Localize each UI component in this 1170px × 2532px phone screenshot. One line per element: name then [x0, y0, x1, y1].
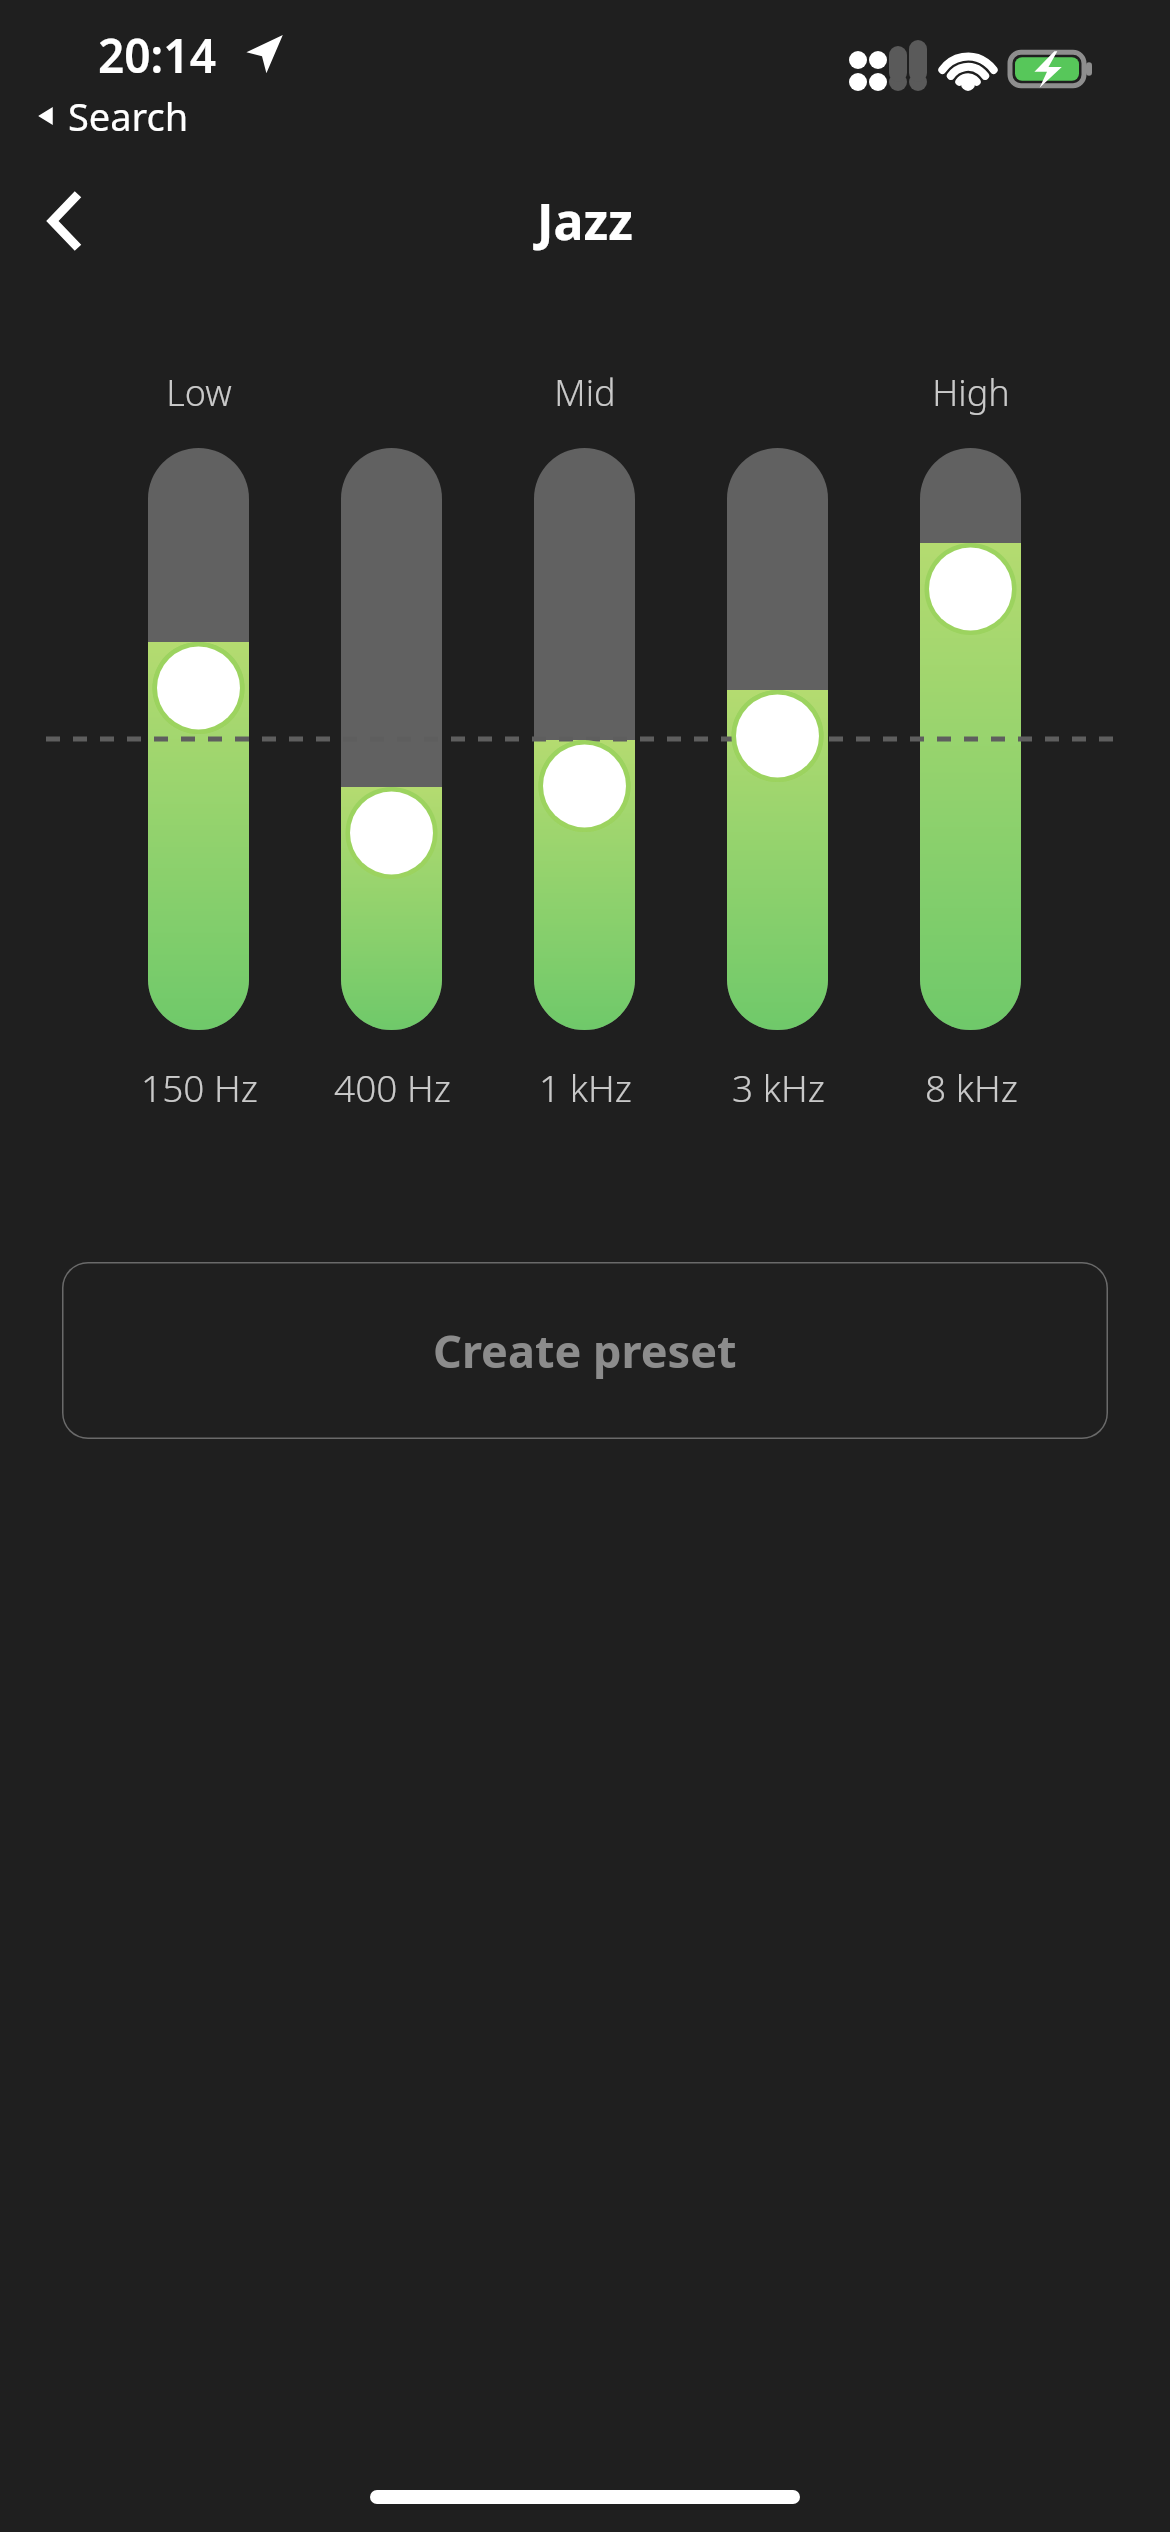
staticText: High [932, 368, 1010, 417]
staticText: 8 kHz [925, 1062, 1018, 1112]
button[interactable]: 150 Hz band level [148, 448, 249, 1030]
button[interactable]: Create preset [62, 1262, 1108, 1439]
button[interactable]: Back [20, 177, 108, 265]
staticText: 400 Hz [334, 1062, 451, 1112]
button[interactable]: 1 kHz band level [534, 448, 635, 1030]
button[interactable]: 400 Hz band level [341, 448, 442, 1030]
button[interactable]: 3 kHz band level [727, 448, 828, 1030]
staticText: 20:14 [98, 24, 216, 87]
button[interactable]: 8 kHz band level [920, 448, 1021, 1030]
staticText: Mid [554, 368, 616, 417]
button[interactable]: Search [34, 90, 189, 142]
staticText: Jazz [537, 187, 633, 255]
staticText: Low [166, 368, 232, 417]
staticText: Search [68, 90, 189, 142]
staticText: 1 kHz [539, 1062, 632, 1112]
staticText: 150 Hz [141, 1062, 258, 1112]
staticText: 3 kHz [732, 1062, 825, 1112]
staticText: Create preset [433, 1320, 737, 1381]
